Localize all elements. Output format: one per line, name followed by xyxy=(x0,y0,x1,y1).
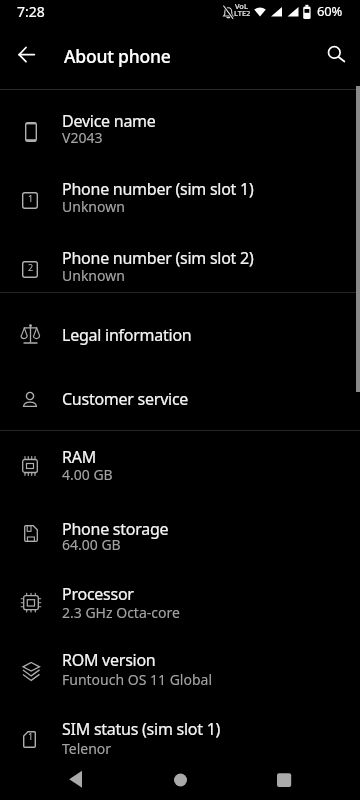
staticText: 4.00 GB xyxy=(62,465,113,484)
staticText: Phone storage xyxy=(62,518,169,540)
staticText: Unknown xyxy=(62,197,125,216)
button[interactable] xyxy=(6,44,42,68)
button[interactable] xyxy=(322,40,354,68)
staticText: 2.3 GHz Octa-core xyxy=(62,603,180,622)
staticText: Telenor xyxy=(62,739,112,758)
staticText: 7:28 xyxy=(17,2,45,21)
button[interactable]: 1 xyxy=(0,704,360,766)
staticText: Phone number (sim slot 2) xyxy=(62,247,254,269)
staticText: 1 xyxy=(28,192,34,204)
button[interactable]: RAM xyxy=(0,432,360,500)
staticText: 1 xyxy=(28,730,34,742)
staticText: Funtouch OS 11 Global xyxy=(62,670,213,689)
staticText: Processor xyxy=(62,583,134,605)
staticText: Customer service xyxy=(62,388,189,410)
staticText: ROM version xyxy=(62,649,156,671)
staticText: Phone number (sim slot 1) xyxy=(62,178,254,200)
staticText: SIM status (sim slot 1) xyxy=(62,718,221,740)
button[interactable]: Customer service xyxy=(0,366,360,430)
button[interactable]: 1 xyxy=(0,163,360,232)
staticText: Unknown xyxy=(62,266,125,285)
staticText: RAM xyxy=(62,446,96,468)
button[interactable]: Phone storage xyxy=(0,500,360,568)
button[interactable] xyxy=(58,765,94,795)
button[interactable]: Device name xyxy=(0,94,360,163)
staticText: 64.00 GB xyxy=(62,535,121,554)
button[interactable]: 2 xyxy=(0,232,360,301)
button[interactable]: Legal information xyxy=(0,302,360,366)
staticText: 2 xyxy=(28,261,34,273)
staticText: Legal information xyxy=(62,324,192,346)
staticText: LTE2 xyxy=(234,8,251,18)
staticText: V2043 xyxy=(62,128,103,147)
staticText: 60% xyxy=(317,2,343,20)
button[interactable] xyxy=(266,765,302,795)
staticText: Device name xyxy=(62,110,156,132)
button[interactable]: Processor xyxy=(0,568,360,636)
button[interactable] xyxy=(162,765,198,795)
staticText: About phone xyxy=(64,44,171,68)
button[interactable]: ROM version xyxy=(0,636,360,704)
staticText: VoL xyxy=(235,1,248,11)
